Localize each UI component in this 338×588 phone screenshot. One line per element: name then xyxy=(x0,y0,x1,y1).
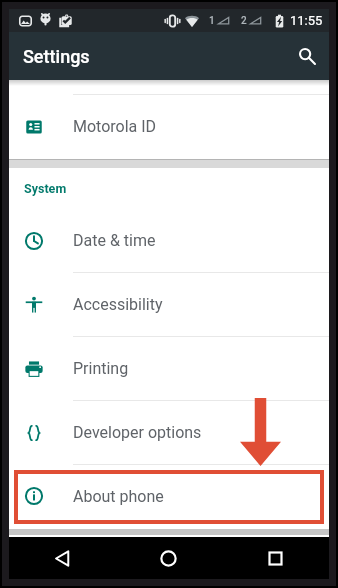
staticText: Developer options xyxy=(73,423,202,442)
staticText: Printing xyxy=(73,359,129,378)
staticText: System xyxy=(24,181,67,196)
staticText: 2 xyxy=(241,15,247,27)
staticText: About phone xyxy=(73,487,164,506)
button[interactable]: Back xyxy=(9,537,115,579)
staticText: Motorola ID xyxy=(73,117,157,136)
button[interactable]: Home xyxy=(115,537,222,579)
button[interactable]: Accessibility xyxy=(9,273,329,337)
button[interactable]: Developer options xyxy=(9,401,329,465)
staticText: 11:55 xyxy=(290,13,323,28)
button[interactable]: Motorola ID xyxy=(9,95,329,159)
button[interactable]: Search xyxy=(287,36,327,76)
staticText: 1 xyxy=(209,15,215,27)
staticText: Date & time xyxy=(73,231,156,250)
button[interactable]: About phone xyxy=(9,465,329,528)
button[interactable]: Printing xyxy=(9,337,329,401)
staticText: Accessibility xyxy=(73,295,163,314)
button[interactable]: Date & time xyxy=(9,209,329,273)
button[interactable]: Recent apps xyxy=(222,537,329,579)
staticText: Settings xyxy=(23,46,90,67)
